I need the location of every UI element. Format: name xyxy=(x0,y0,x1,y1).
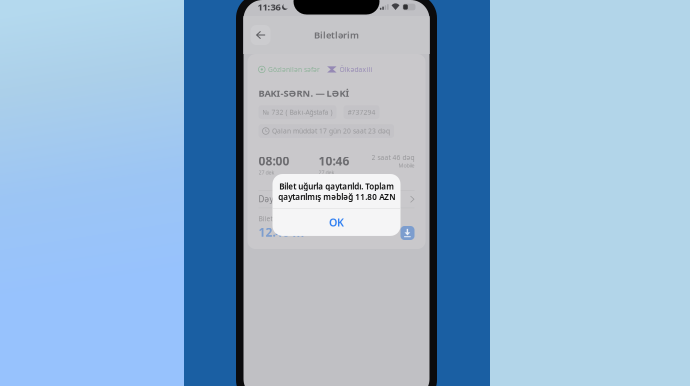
staticText: № 732 ( Bakı-Ağstafa ) xyxy=(262,108,332,117)
staticText: Biletlərim xyxy=(314,29,359,41)
staticText: Dəyişiklik və qaytarma şərtləri xyxy=(258,194,369,204)
button[interactable]: Dəyişiklik və qaytarma şərtləri xyxy=(258,191,414,208)
staticText: Bilet qiyməti xyxy=(258,214,297,223)
button[interactable]: Download ticket xyxy=(400,226,414,240)
staticText: 2 saat 46 dəq xyxy=(371,153,414,162)
staticText: BAKI-SƏRN. — LƏKİ xyxy=(258,87,349,99)
staticText: 10:46 xyxy=(318,153,349,169)
staticText: Mobile xyxy=(398,162,414,169)
staticText: #737294 xyxy=(347,108,375,117)
staticText: Qalan müddət 17 gün 20 saat 23 dəq xyxy=(272,127,390,135)
button[interactable]: Back xyxy=(250,25,270,45)
staticText: 08:00 xyxy=(258,153,289,169)
staticText: 11:36 xyxy=(257,1,280,13)
staticText: Gözlənilən səfər xyxy=(268,65,320,74)
staticText: 12.40 m xyxy=(258,224,304,240)
button[interactable]: OK xyxy=(272,209,400,236)
staticText: OK xyxy=(329,215,344,229)
staticText: 27 dek xyxy=(318,169,334,176)
staticText: Ölkədaxili xyxy=(340,65,373,74)
staticText: 27 dek xyxy=(258,169,274,176)
staticText: Bilet uğurla qaytarıldı. Toplam qaytarıl… xyxy=(278,181,395,202)
